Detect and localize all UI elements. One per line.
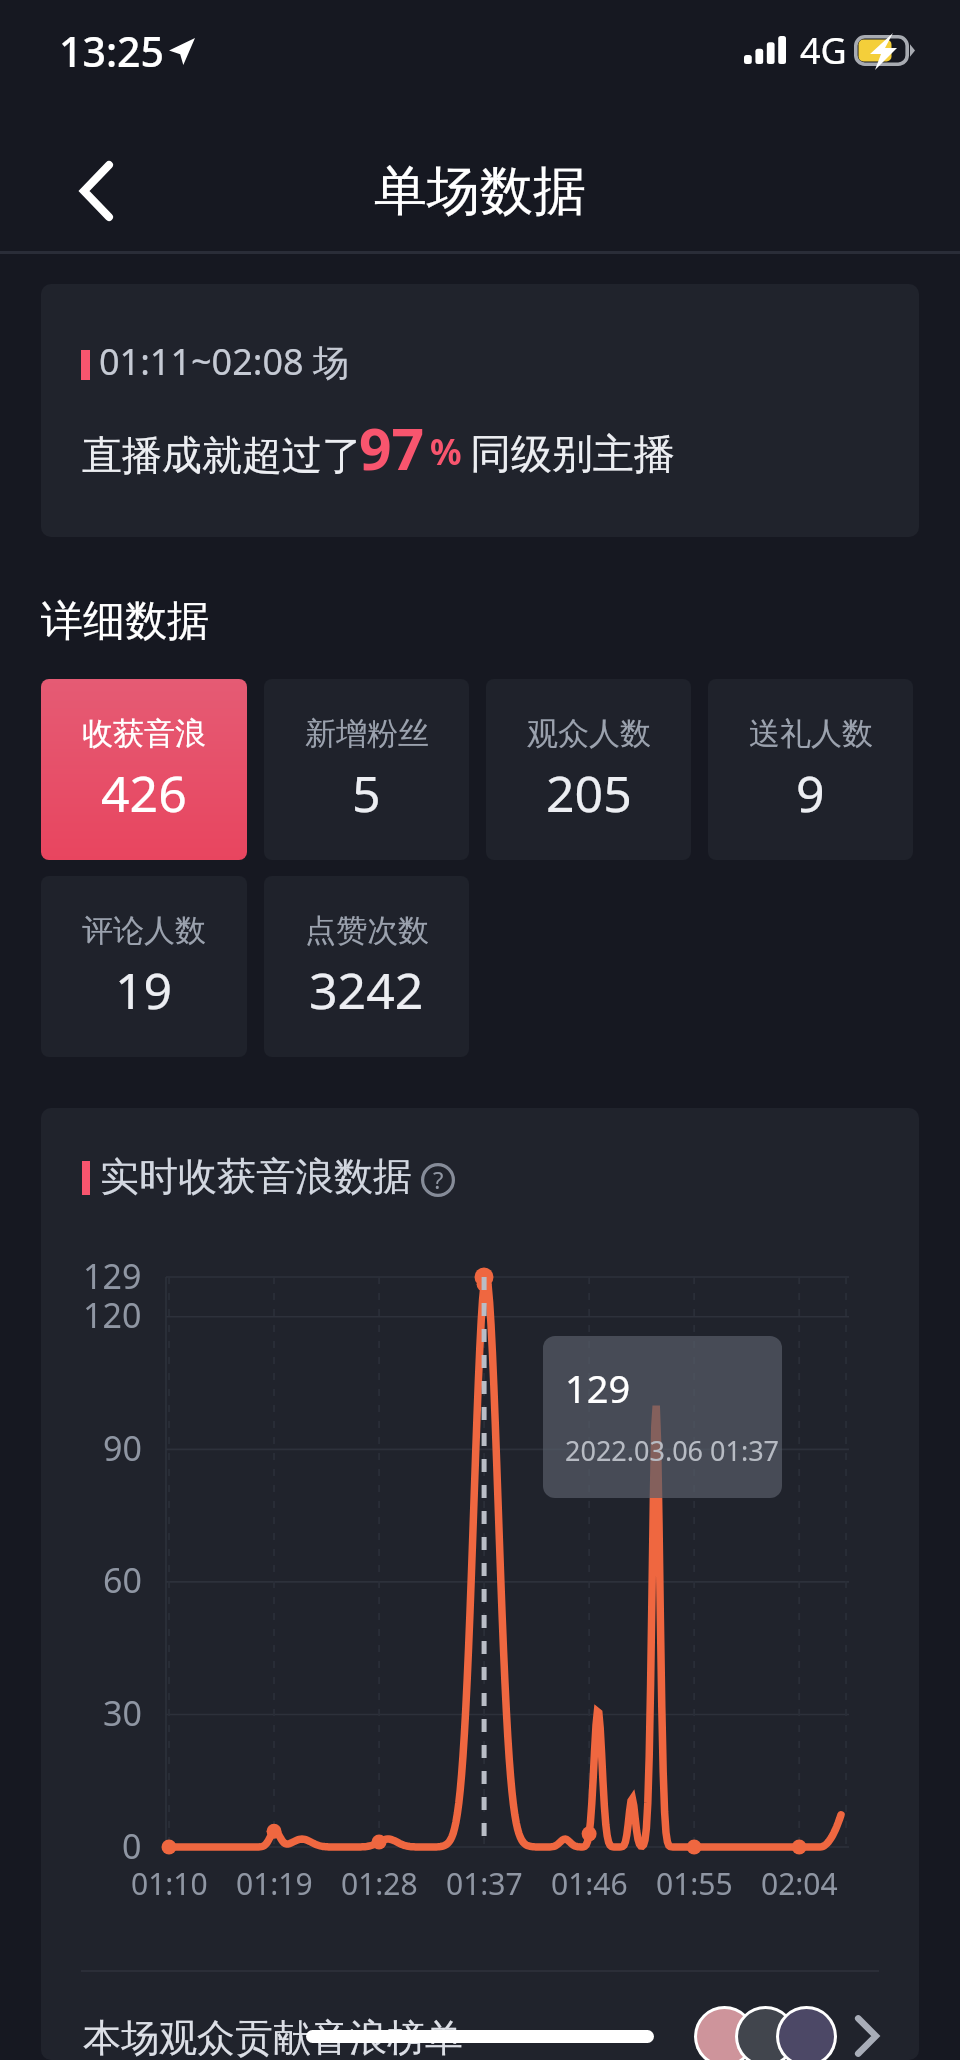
staticText: ?	[433, 1163, 444, 1196]
staticText: 60	[103, 1557, 142, 1603]
staticText: 02:04	[761, 1863, 838, 1904]
staticText: 426	[101, 759, 187, 827]
button[interactable]: 点赞次数	[264, 876, 469, 1057]
staticText: 评论人数	[82, 911, 206, 950]
staticText: 01:46	[551, 1863, 628, 1904]
staticText: 129	[83, 1253, 142, 1299]
button[interactable]: Back	[50, 145, 146, 241]
staticText: 13:25	[59, 23, 164, 79]
button[interactable]: 观众人数	[486, 679, 691, 860]
staticText: 4G	[800, 26, 847, 75]
staticText: 同级别主播	[470, 429, 675, 481]
staticText: 19	[115, 956, 173, 1024]
staticText: 205	[546, 759, 632, 827]
button[interactable]: Help	[414, 1156, 462, 1204]
staticText: 01:10	[131, 1863, 208, 1904]
button[interactable]: 收获音浪	[41, 679, 247, 860]
staticText: 01:37	[446, 1863, 523, 1904]
button[interactable]: 送礼人数	[708, 679, 913, 860]
button[interactable]: 评论人数	[41, 876, 247, 1057]
staticText: 点赞次数	[305, 911, 429, 950]
staticText: 120	[83, 1292, 142, 1338]
staticText: 详细数据	[41, 595, 209, 648]
button[interactable]: 本场观众贡献音浪榜单	[41, 1972, 919, 2060]
staticText: 本场观众贡献音浪榜单	[83, 2014, 463, 2060]
staticText: 0	[122, 1823, 142, 1869]
staticText: 90	[103, 1425, 142, 1471]
staticText: %	[430, 428, 462, 476]
staticText: 观众人数	[527, 714, 651, 753]
staticText: 单场数据	[374, 158, 586, 225]
staticText: 129	[565, 1362, 631, 1414]
staticText: 2022.03.06 01:37	[565, 1432, 780, 1469]
staticText: 01:55	[656, 1863, 733, 1904]
staticText: 01:28	[341, 1863, 418, 1904]
staticText: 97	[359, 409, 425, 487]
staticText: 新增粉丝	[305, 714, 429, 753]
staticText: 3242	[309, 956, 424, 1024]
staticText: 5	[352, 759, 381, 827]
staticText: 直播成就超过了	[82, 430, 362, 480]
staticText: 收获音浪	[82, 714, 206, 753]
staticText: 01:11~02:08 场	[99, 337, 349, 386]
staticText: 01:19	[236, 1863, 313, 1904]
button[interactable]: 01:11~02:08 场	[41, 284, 919, 537]
button[interactable]: More	[838, 2007, 896, 2060]
staticText: 实时收获音浪数据	[100, 1152, 412, 1201]
staticText: 30	[103, 1690, 142, 1736]
staticText: 送礼人数	[749, 714, 873, 753]
button[interactable]: 新增粉丝	[264, 679, 469, 860]
staticText: 9	[796, 759, 825, 827]
